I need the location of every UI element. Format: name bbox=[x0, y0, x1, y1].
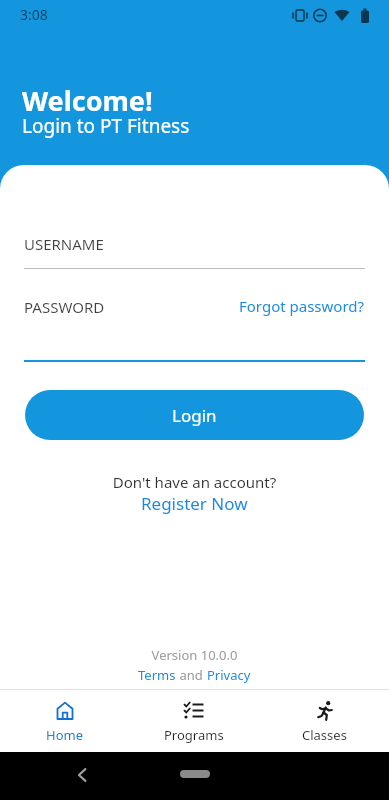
staticText: Login to PT Fitness bbox=[22, 113, 190, 139]
button[interactable]: Privacy bbox=[207, 666, 251, 684]
staticText: Don't have an account? bbox=[0, 472, 389, 492]
button[interactable]: Classes bbox=[259, 690, 389, 752]
staticText: Login bbox=[172, 404, 217, 427]
staticText: and bbox=[176, 666, 207, 684]
button[interactable]: Forgot password? bbox=[239, 296, 365, 316]
staticText: Home bbox=[46, 726, 83, 744]
staticText: Programs bbox=[164, 726, 224, 744]
staticText: Version 10.0.0 bbox=[0, 646, 389, 664]
staticText: Classes bbox=[302, 726, 347, 744]
button[interactable]: Home bbox=[0, 690, 129, 752]
button[interactable]: Login bbox=[25, 390, 364, 440]
button[interactable]: Programs bbox=[129, 690, 259, 752]
button[interactable]: Register Now bbox=[141, 492, 248, 515]
staticText: 3:08 bbox=[20, 5, 48, 24]
staticText: Welcome! bbox=[22, 82, 153, 119]
staticText: USERNAME bbox=[24, 234, 104, 254]
button[interactable]: Terms bbox=[138, 666, 176, 684]
staticText: PASSWORD bbox=[24, 297, 105, 317]
